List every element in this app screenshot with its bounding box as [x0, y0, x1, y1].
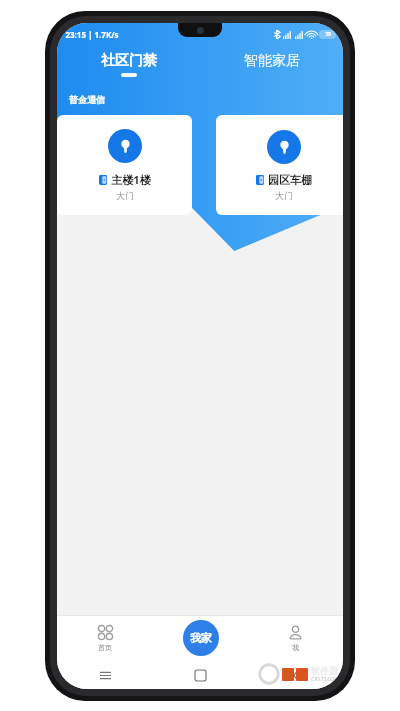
staticText: 普金通信 — [69, 94, 105, 105]
staticText: 软件园 — [311, 665, 338, 676]
button[interactable]: 主楼1楼 — [57, 115, 192, 215]
staticText: 社区门禁 — [101, 52, 157, 70]
staticText: 我家 — [190, 631, 212, 645]
button[interactable]: 首页 — [57, 615, 153, 661]
staticText: CR173.COM — [311, 676, 339, 683]
button[interactable]: 我 — [248, 615, 343, 661]
staticText: 我 — [292, 643, 299, 652]
staticText: 大门 — [275, 190, 293, 201]
staticText: 23:15 | 1.7K/s — [65, 29, 119, 40]
button[interactable]: 智能家居 — [200, 49, 343, 80]
button[interactable]: 社区门禁 — [57, 49, 200, 80]
staticText: 主楼1楼 — [111, 172, 151, 187]
button[interactable]: 我家 — [183, 620, 219, 656]
staticText: 园区车棚 — [268, 173, 312, 187]
staticText: 39 — [325, 31, 331, 38]
staticText: 智能家居 — [244, 52, 300, 70]
staticText: 大门 — [116, 190, 134, 201]
staticText: 首页 — [98, 643, 112, 652]
button[interactable]: 园区车棚 — [216, 115, 343, 215]
